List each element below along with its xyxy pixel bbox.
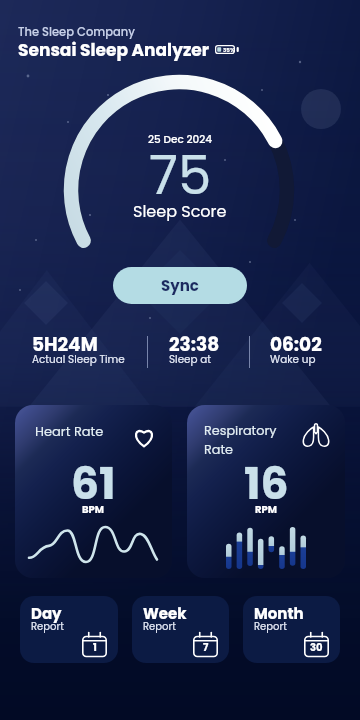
staticText: 35% — [223, 46, 235, 54]
staticText: 7 — [203, 640, 209, 654]
other: Lungs — [300, 422, 332, 447]
staticText: Actual Sleep Time — [32, 352, 125, 367]
other: Battery 35 percent — [215, 45, 239, 55]
button[interactable]: Month — [243, 596, 340, 663]
staticText: Heart Rate — [35, 422, 104, 440]
staticText: 1 — [93, 640, 97, 654]
staticText: Month — [254, 603, 304, 624]
staticText: 30 — [310, 640, 323, 654]
staticText: Sleep Score — [133, 200, 227, 222]
staticText: The Sleep Company — [18, 24, 135, 40]
staticText: Sleep at — [169, 352, 212, 367]
staticText: RPM — [255, 502, 277, 516]
staticText: 61 — [71, 453, 116, 515]
button[interactable]: Day — [20, 596, 118, 663]
staticText: 75 — [149, 138, 212, 212]
staticText: Report — [254, 619, 287, 633]
staticText: Sensai Sleep Analyzer — [18, 38, 210, 62]
staticText: 25 Dec 2024 — [148, 132, 213, 147]
button[interactable]: Week — [132, 596, 229, 663]
staticText: Wake up — [270, 352, 316, 367]
staticText: BPM — [82, 502, 105, 516]
staticText: 16 — [244, 453, 289, 515]
staticText: Respiratory Rate — [204, 422, 277, 458]
button[interactable]: Sync — [113, 267, 247, 304]
other: Heart — [133, 427, 155, 447]
staticText: Sync — [161, 275, 199, 296]
button[interactable]: Heart Rate — [15, 405, 172, 578]
staticText: 23:38 — [169, 332, 220, 358]
staticText: 5H24M — [32, 332, 98, 358]
staticText: Week — [143, 603, 187, 624]
button[interactable]: Respiratory Rate — [187, 405, 345, 578]
staticText: Report — [143, 619, 176, 633]
staticText: 06:02 — [270, 332, 322, 358]
staticText: Day — [31, 603, 62, 624]
staticText: Report — [31, 619, 64, 633]
